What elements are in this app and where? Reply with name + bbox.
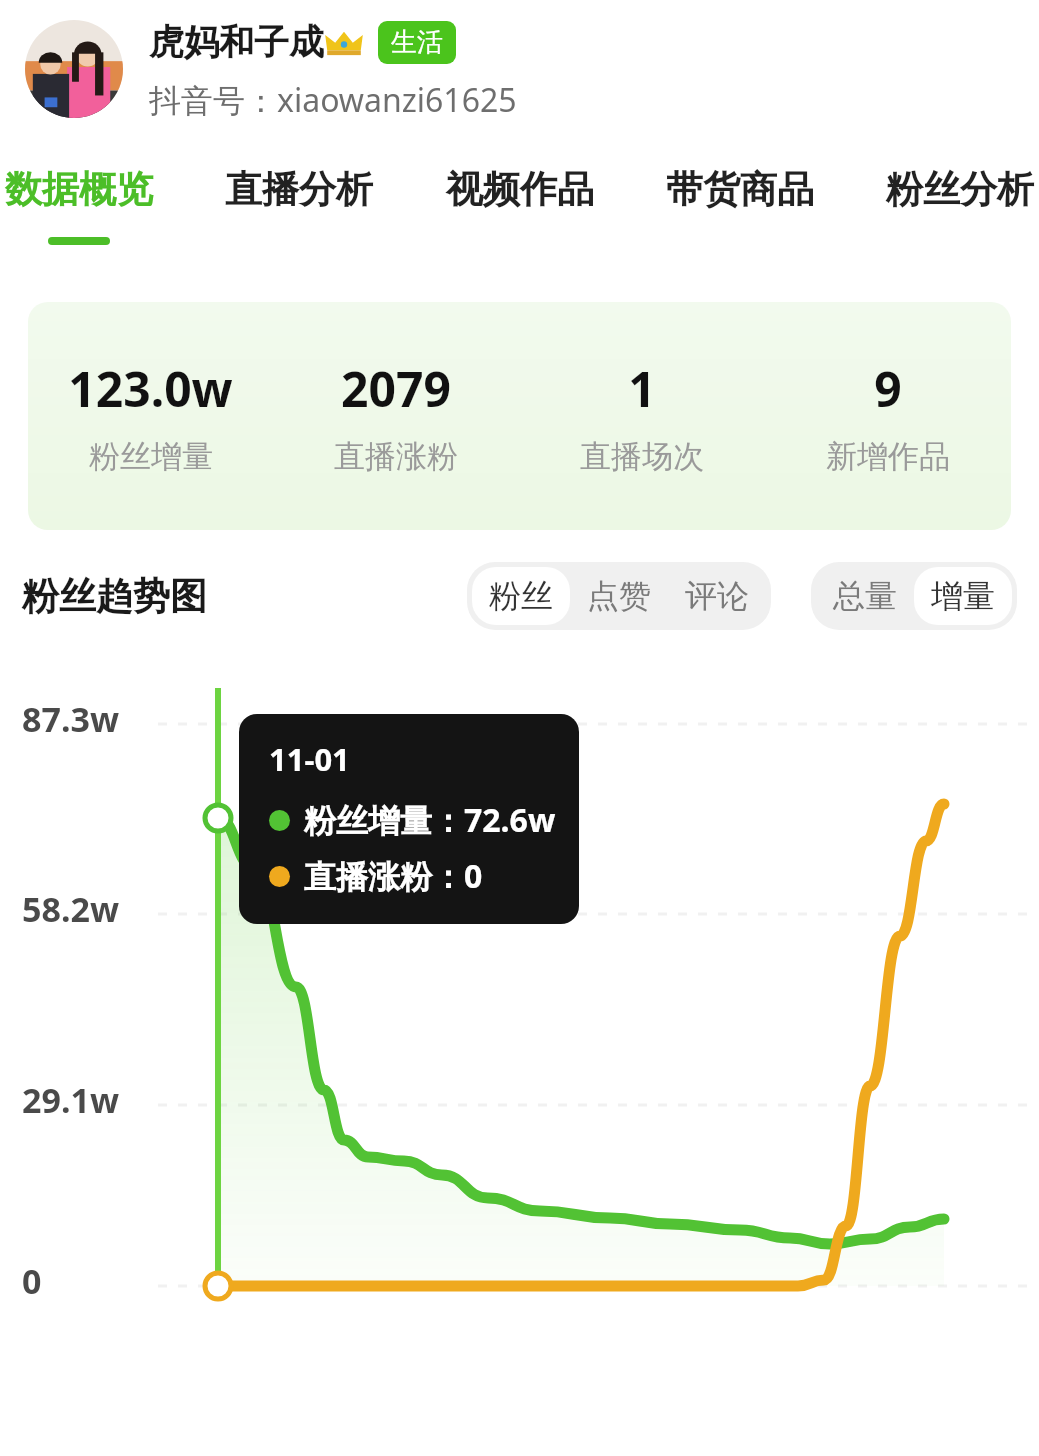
- staticText: 29.1w: [22, 1077, 120, 1123]
- button[interactable]: 粉丝: [472, 567, 570, 625]
- button[interactable]: 123.0w: [28, 302, 1011, 530]
- staticText: 总量: [833, 576, 897, 616]
- other: Profile avatar: [25, 20, 123, 118]
- button[interactable]: 总量: [816, 567, 914, 625]
- staticText: 粉丝增量: [89, 437, 213, 476]
- staticText: 虎妈和子成: [149, 20, 324, 64]
- staticText: 数据概览: [5, 166, 153, 213]
- staticText: 新增作品: [826, 437, 950, 476]
- staticText: 1: [628, 356, 656, 421]
- staticText: 0: [22, 1258, 42, 1304]
- staticText: 粉丝分析: [886, 166, 1034, 213]
- button[interactable]: 点赞: [570, 567, 668, 625]
- staticText: 87.3w: [22, 696, 120, 742]
- button[interactable]: 直播分析: [220, 162, 378, 249]
- button[interactable]: 生活: [378, 21, 456, 64]
- staticText: 123.0w: [68, 356, 233, 421]
- button[interactable]: 数据概览: [0, 162, 158, 249]
- staticText: 9: [874, 356, 902, 421]
- staticText: 2079: [341, 356, 451, 421]
- staticText: 生活: [391, 26, 443, 59]
- staticText: 粉丝趋势图: [22, 573, 207, 620]
- staticText: 带货商品: [666, 166, 814, 213]
- staticText: 抖音号：xiaowanzi61625: [149, 78, 517, 122]
- button[interactable]: 视频作品: [441, 162, 599, 249]
- staticText: 直播涨粉: [334, 437, 458, 476]
- staticText: 粉丝: [489, 576, 553, 616]
- button[interactable]: 粉丝分析: [881, 162, 1039, 249]
- staticText: 粉丝增量：72.6w: [304, 798, 556, 842]
- button[interactable]: 评论: [668, 567, 766, 625]
- staticText: 直播分析: [225, 166, 373, 213]
- staticText: 视频作品: [446, 166, 594, 213]
- staticText: 11-01: [269, 738, 350, 780]
- staticText: 点赞: [587, 576, 651, 616]
- button[interactable]: 带货商品: [661, 162, 819, 249]
- staticText: 58.2w: [22, 886, 120, 932]
- staticText: 直播涨粉：0: [304, 854, 483, 898]
- staticText: 增量: [931, 576, 995, 616]
- staticText: 直播场次: [580, 437, 704, 476]
- button[interactable]: Profile avatar: [0, 0, 1039, 162]
- staticText: 评论: [685, 576, 749, 616]
- button[interactable]: 增量: [914, 567, 1012, 625]
- button[interactable]: 11-01: [239, 714, 579, 924]
